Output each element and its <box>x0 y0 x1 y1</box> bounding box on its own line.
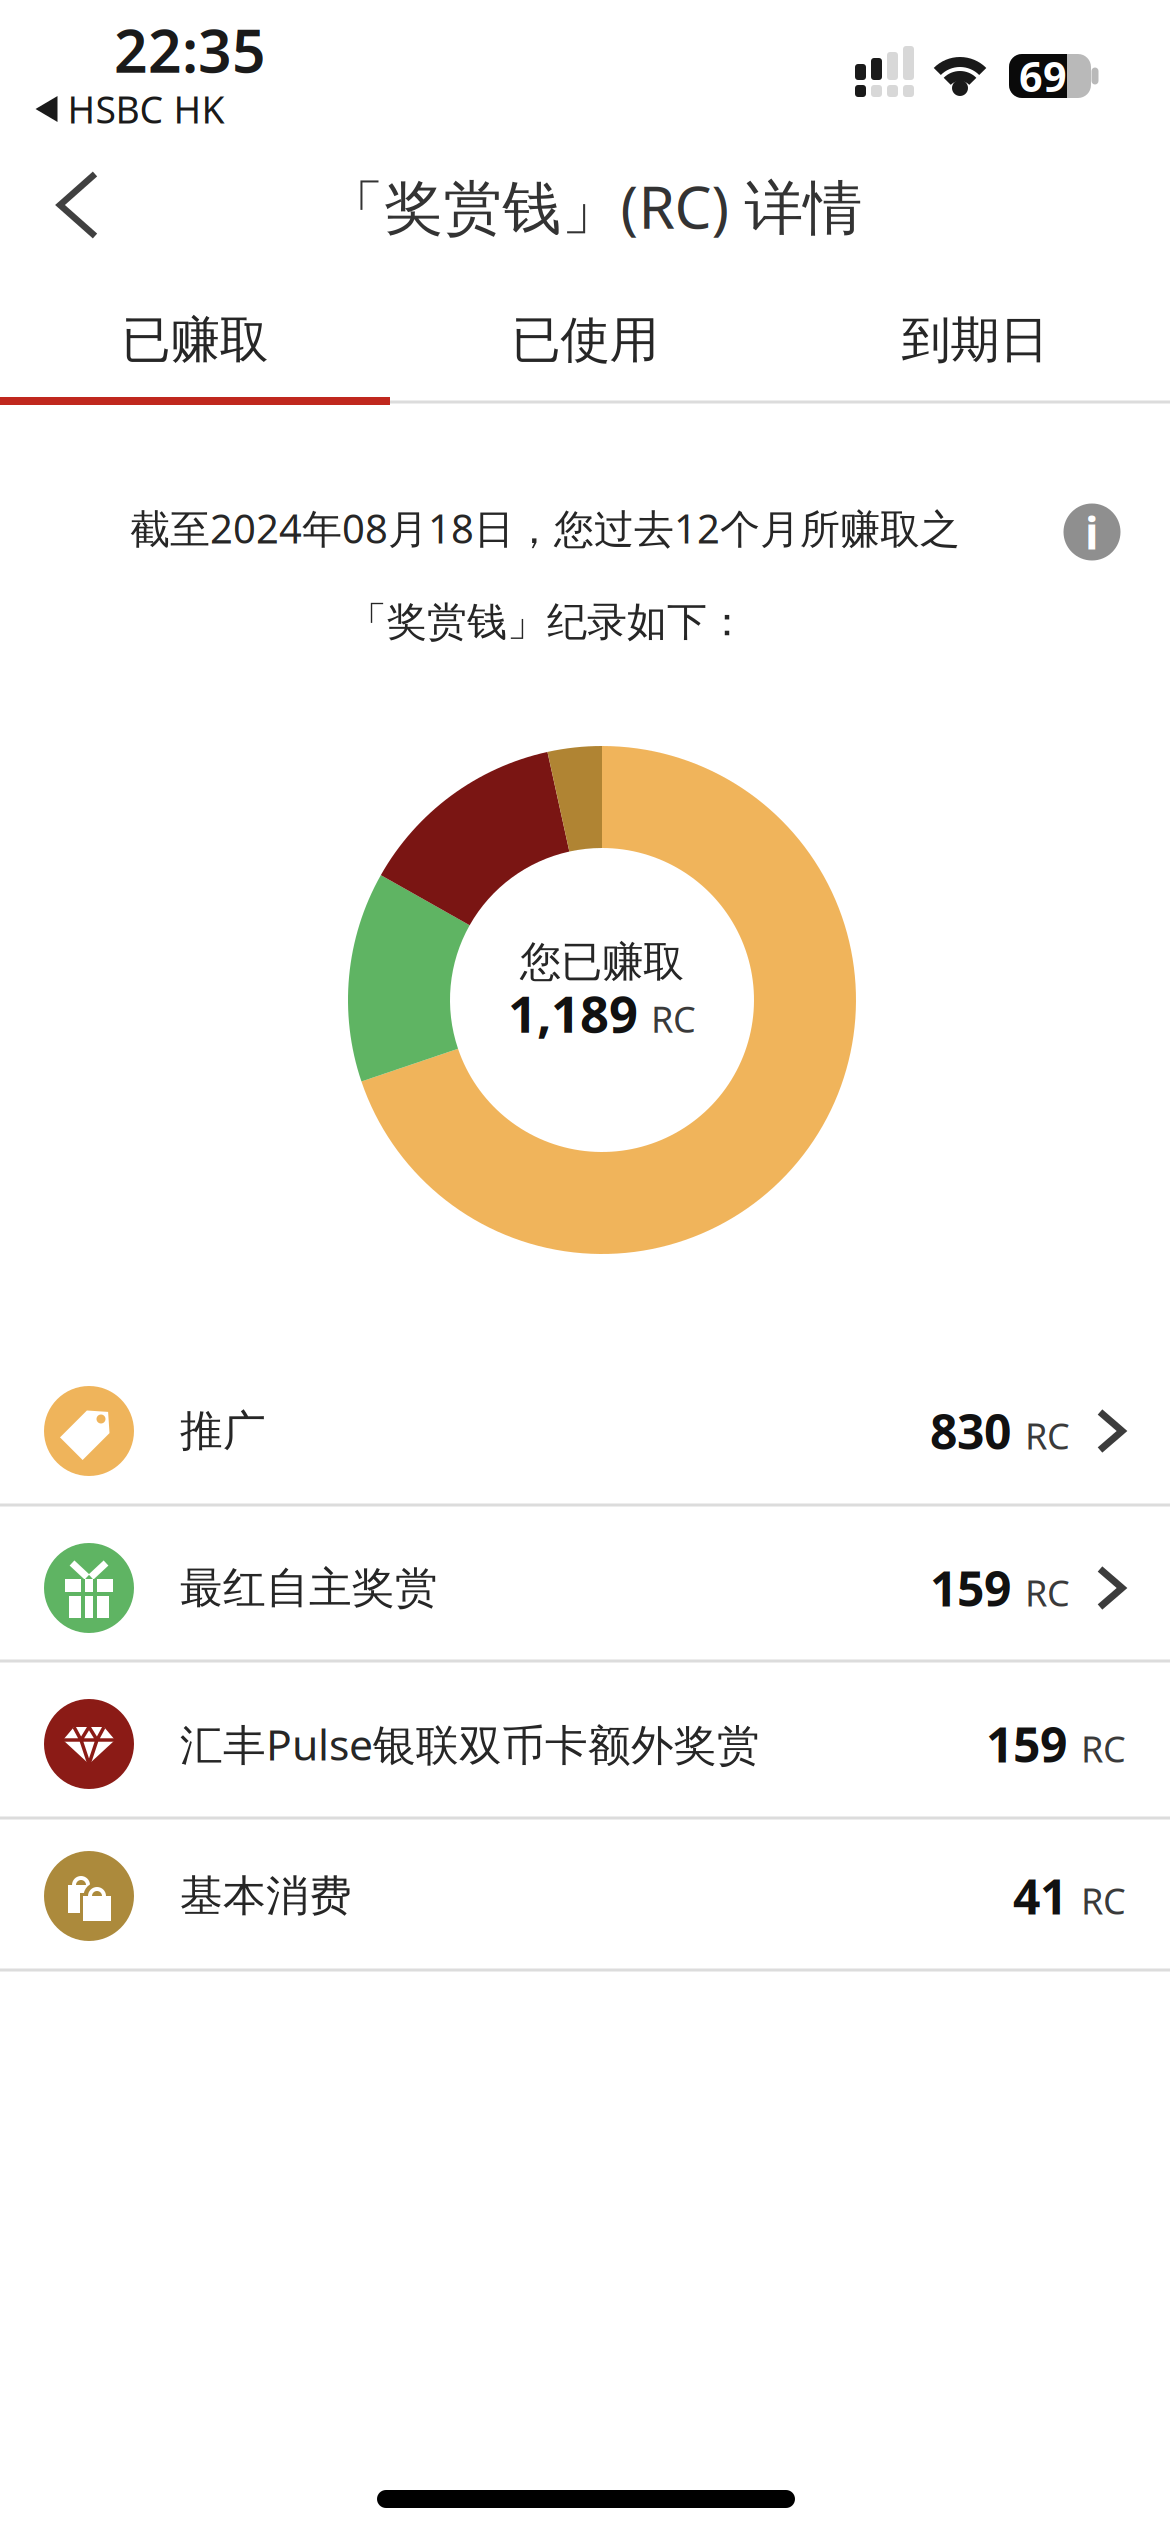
staticText: 「奖赏钱」纪录如下： <box>347 597 747 646</box>
button[interactable]: Back <box>49 165 109 245</box>
staticText: RC <box>651 995 696 1043</box>
staticText: HSBC HK <box>67 84 224 134</box>
button[interactable]: 推广 <box>0 1356 1170 1506</box>
staticText: 截至2024年08月18日，您过去12个月所赚取之 <box>130 501 960 554</box>
button[interactable]: 最红自主奖赏 <box>0 1513 1170 1663</box>
button[interactable]: More information <box>1063 503 1120 560</box>
staticText: RC <box>1025 1412 1070 1460</box>
staticText: i <box>1085 502 1099 562</box>
staticText: 「奖赏钱」(RC) 详情 <box>325 167 862 245</box>
staticText: 1,189 <box>508 979 638 1047</box>
staticText: 推广 <box>180 1405 266 1457</box>
staticText: 22:35 <box>114 11 266 89</box>
staticText: RC <box>1081 1877 1126 1925</box>
staticText: 159 <box>986 1712 1067 1776</box>
staticText: RC <box>1081 1725 1126 1773</box>
staticText: 69 <box>1019 49 1067 103</box>
staticText: 已使用 <box>511 310 658 370</box>
staticText: 到期日 <box>901 310 1048 370</box>
button[interactable]: 已使用 <box>390 288 780 392</box>
staticText: 41 <box>1013 1864 1067 1928</box>
staticText: 汇丰Pulse银联双币卡额外奖赏 <box>180 1716 760 1772</box>
staticText: 最红自主奖赏 <box>180 1562 438 1614</box>
staticText: 830 <box>930 1399 1011 1463</box>
button[interactable]: 已赚取 <box>0 288 390 392</box>
staticText: 您已赚取 <box>520 937 684 987</box>
staticText: 159 <box>930 1556 1011 1620</box>
staticText: 已赚取 <box>121 310 268 370</box>
button[interactable]: 到期日 <box>780 288 1170 392</box>
staticText: 基本消费 <box>180 1870 352 1922</box>
staticText: RC <box>1025 1569 1070 1617</box>
